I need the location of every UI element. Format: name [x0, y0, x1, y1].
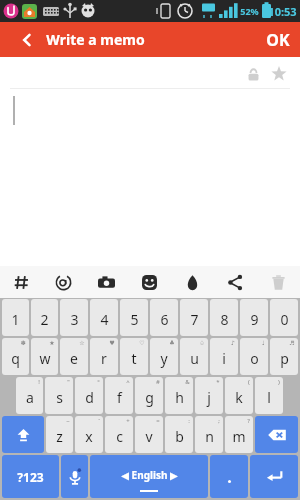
button[interactable]: ° — [75, 377, 103, 414]
staticText: 8 — [220, 310, 229, 329]
staticText: b — [175, 427, 184, 446]
button[interactable]: ♤ — [180, 338, 208, 375]
staticText: i — [222, 349, 226, 368]
button[interactable]: ? — [225, 416, 253, 453]
button[interactable]: 5 — [120, 299, 148, 336]
staticText: Write a memo — [46, 30, 145, 49]
button[interactable]: 9 — [240, 299, 268, 336]
button[interactable]: 0 — [270, 299, 298, 336]
staticText: ♪ — [231, 339, 235, 346]
staticText: ^ — [126, 378, 130, 386]
button[interactable]: ( — [225, 377, 253, 414]
button[interactable]: 4 — [90, 299, 118, 336]
button[interactable]: Share — [214, 266, 257, 298]
staticText: ?123 — [17, 469, 44, 485]
button[interactable]: 6 — [150, 299, 178, 336]
button[interactable]: 2 — [31, 299, 58, 336]
staticText: ◀ English ▶ — [121, 468, 178, 482]
staticText: ; — [218, 417, 220, 425]
button[interactable]: & — [165, 377, 193, 414]
staticText: f — [117, 388, 122, 407]
staticText: OK — [266, 29, 290, 51]
button[interactable]: OK — [266, 22, 290, 57]
staticText: z — [56, 427, 63, 446]
staticText: ! — [38, 378, 40, 386]
button[interactable]: Shift — [2, 416, 44, 453]
staticText: = — [156, 417, 160, 425]
button[interactable]: # — [135, 377, 163, 414]
staticText: ☆ — [79, 339, 85, 346]
staticText: 52% — [240, 5, 259, 17]
button[interactable]: Mention — [42, 266, 85, 298]
button[interactable]: ^ — [105, 377, 133, 414]
button[interactable]: ` — [75, 416, 103, 453]
staticText: ) — [278, 378, 280, 386]
staticText: 5 — [130, 310, 139, 329]
button[interactable]: : — [165, 416, 193, 453]
button[interactable]: * — [195, 377, 223, 414]
button[interactable]: Enter — [250, 455, 298, 498]
staticText: t — [131, 349, 137, 368]
button[interactable]: 1 — [2, 299, 29, 336]
button[interactable]: ~ — [46, 416, 73, 453]
staticText: h — [175, 388, 184, 407]
staticText: c — [116, 427, 123, 446]
staticText: ♥ — [109, 339, 115, 346]
button[interactable]: Space, English — [90, 455, 208, 498]
staticText: 3 — [70, 310, 79, 329]
staticText: w — [39, 349, 51, 368]
staticText: * — [216, 378, 220, 386]
button[interactable]: ; — [195, 416, 223, 453]
button[interactable]: = — [135, 416, 163, 453]
staticText: ♤ — [199, 339, 205, 346]
button[interactable]: ☆ — [60, 338, 88, 375]
staticText: m — [232, 427, 246, 446]
staticText: v — [145, 427, 153, 446]
staticText: ✽ — [20, 339, 26, 346]
button[interactable]: ★ — [31, 338, 58, 375]
staticText: ♡ — [139, 339, 145, 346]
button[interactable]: ✽ — [2, 338, 29, 375]
staticText: 2 — [40, 310, 49, 329]
staticText: x — [85, 427, 93, 446]
staticText: p — [280, 349, 289, 368]
button[interactable]: Back — [14, 27, 40, 53]
button[interactable]: Ink — [171, 266, 214, 298]
button[interactable]: ♩ — [240, 338, 268, 375]
button[interactable]: Emoji — [128, 266, 171, 298]
button[interactable]: Voice input — [61, 455, 88, 498]
button[interactable]: ♣ — [150, 338, 178, 375]
button[interactable]: Delete — [257, 266, 300, 298]
button[interactable]: " — [45, 377, 73, 414]
button[interactable]: ?123 — [2, 455, 59, 498]
staticText: ° — [97, 378, 100, 386]
staticText: 4 — [100, 310, 109, 329]
button[interactable]: 8 — [210, 299, 238, 336]
button[interactable]: Lock memo — [240, 61, 266, 87]
staticText: ( — [248, 378, 250, 386]
button[interactable]: ♬ — [270, 338, 298, 375]
staticText: : — [188, 417, 190, 425]
button[interactable]: ♪ — [210, 338, 238, 375]
staticText: ♣ — [169, 339, 175, 346]
button[interactable] — [210, 455, 248, 498]
staticText: l — [267, 388, 271, 407]
button[interactable]: 7 — [180, 299, 208, 336]
staticText: g — [145, 388, 154, 407]
staticText: 10:53 — [268, 4, 297, 19]
staticText: q — [11, 349, 20, 368]
staticText: r — [101, 349, 107, 368]
staticText: y — [160, 349, 168, 368]
button[interactable]: ! — [16, 377, 43, 414]
button[interactable]: Backspace — [255, 416, 298, 453]
button[interactable]: ♥ — [90, 338, 118, 375]
staticText: ` — [98, 417, 100, 425]
staticText: 1 — [11, 310, 20, 329]
button[interactable]: 3 — [60, 299, 88, 336]
button[interactable]: ♡ — [120, 338, 148, 375]
button[interactable]: ) — [255, 377, 283, 414]
button[interactable]: + — [105, 416, 133, 453]
button[interactable]: Hashtag — [0, 266, 42, 298]
button[interactable]: Camera — [85, 266, 128, 298]
button[interactable]: Favorite — [266, 61, 292, 87]
